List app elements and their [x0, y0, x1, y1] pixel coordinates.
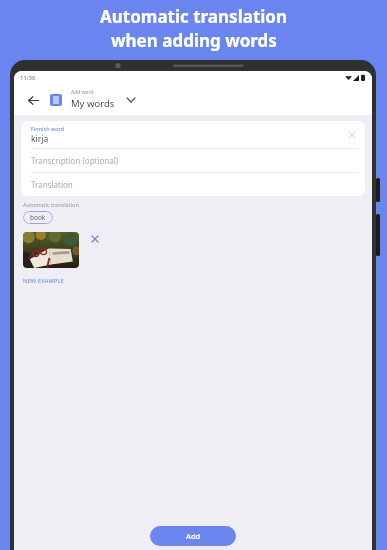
button[interactable]: Translation	[21, 173, 365, 196]
staticText: Automatic translation	[23, 201, 79, 208]
staticText: NEW EXAMPLE	[23, 277, 65, 284]
staticText: 11:36	[20, 74, 36, 82]
staticText: when adding words	[111, 29, 277, 52]
button[interactable]: Back	[23, 90, 43, 110]
staticText: Finnish word	[31, 125, 65, 132]
staticText: Transcription (optional)	[31, 155, 119, 166]
staticText: kirja	[31, 133, 49, 145]
button[interactable]: Remove example	[89, 233, 101, 245]
staticText: Translation	[31, 179, 73, 190]
staticText: Add word	[71, 89, 94, 96]
staticText: Add	[186, 531, 201, 541]
staticText: My words	[71, 97, 115, 110]
staticText: book	[30, 213, 46, 222]
button[interactable]: Finnish word	[21, 121, 365, 148]
button[interactable]: Clear text	[346, 129, 358, 141]
button[interactable]: Switch list	[124, 93, 138, 107]
button[interactable]: Transcription (optional)	[21, 149, 365, 172]
button[interactable]: Example image	[23, 232, 79, 268]
button[interactable]: Add	[150, 526, 236, 546]
staticText: Automatic translation	[100, 5, 288, 28]
button[interactable]: NEW EXAMPLE	[23, 277, 65, 284]
button[interactable]: book	[23, 211, 53, 224]
